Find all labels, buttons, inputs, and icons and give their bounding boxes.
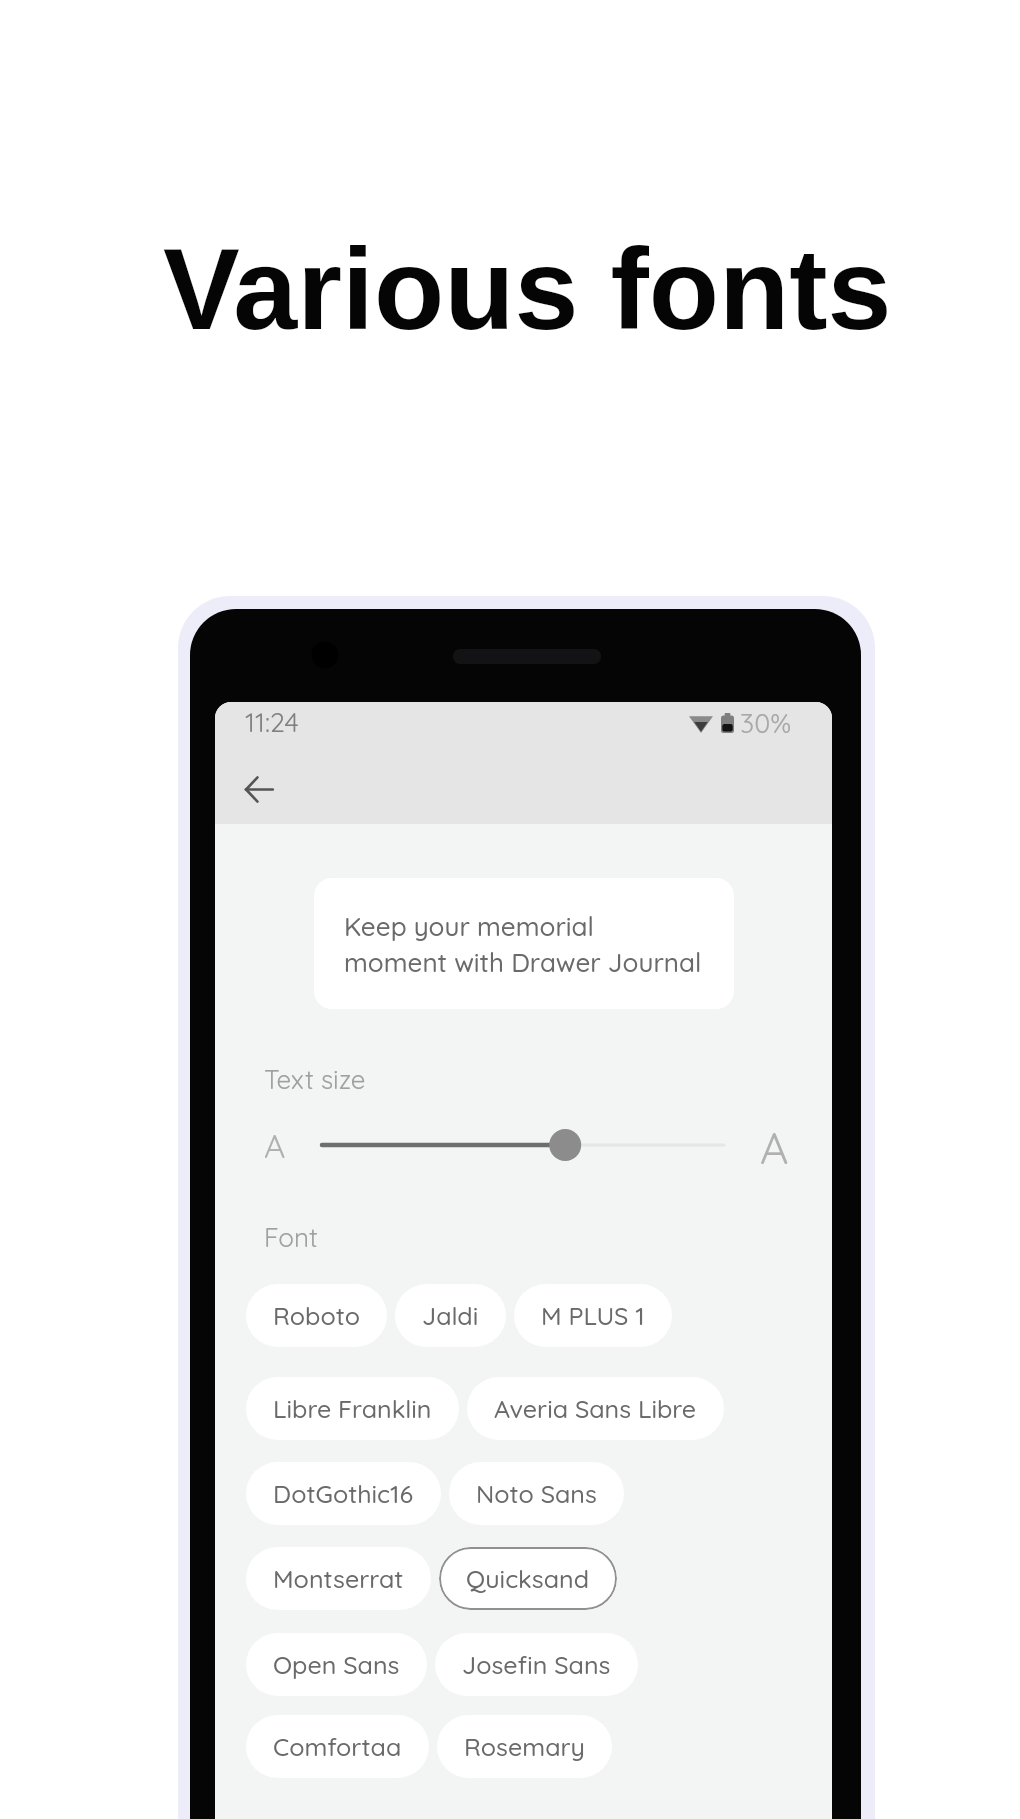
button[interactable]: Rosemary <box>437 1715 612 1778</box>
staticText: 30% <box>740 706 792 740</box>
staticText: Text size <box>264 1063 366 1096</box>
button[interactable]: Keep your memorial moment with Drawer Jo… <box>314 878 734 1009</box>
button[interactable]: Josefin Sans <box>435 1633 638 1696</box>
staticText: Various fonts <box>163 225 892 353</box>
staticText: 11:24 <box>245 705 299 739</box>
button[interactable]: Text size slider <box>317 1125 729 1165</box>
staticText: DotGothic16 <box>273 1478 414 1509</box>
button[interactable]: Libre Franklin <box>246 1377 459 1440</box>
staticText: A <box>760 1120 789 1166</box>
button[interactable]: Roboto <box>246 1284 387 1347</box>
button[interactable]: Montserrat <box>246 1547 431 1610</box>
button[interactable]: Jaldi <box>395 1284 506 1347</box>
button[interactable]: DotGothic16 <box>246 1462 441 1525</box>
staticText: Font <box>264 1221 318 1254</box>
staticText: Rosemary <box>464 1731 585 1762</box>
staticText: Quicksand <box>466 1563 590 1594</box>
staticText: Roboto <box>273 1300 360 1331</box>
staticText: Josefin Sans <box>462 1649 611 1680</box>
staticText: Libre Franklin <box>273 1393 432 1424</box>
staticText: A <box>264 1125 286 1166</box>
button[interactable]: M PLUS 1 <box>514 1284 672 1347</box>
staticText: M PLUS 1 <box>541 1300 645 1331</box>
button[interactable]: Back <box>233 763 285 815</box>
button[interactable]: Open Sans <box>246 1633 427 1696</box>
staticText: Open Sans <box>273 1649 400 1680</box>
staticText: Noto Sans <box>476 1478 597 1509</box>
staticText: Montserrat <box>273 1563 404 1594</box>
staticText: Keep your memorial moment with Drawer Jo… <box>344 910 702 978</box>
button[interactable]: Averia Sans Libre <box>467 1377 724 1440</box>
staticText: Jaldi <box>422 1300 479 1331</box>
staticText: Averia Sans Libre <box>494 1393 697 1424</box>
button[interactable]: Noto Sans <box>449 1462 624 1525</box>
button[interactable]: Quicksand <box>439 1547 617 1610</box>
button[interactable]: Comfortaa <box>246 1715 429 1778</box>
staticText: Comfortaa <box>273 1731 402 1762</box>
